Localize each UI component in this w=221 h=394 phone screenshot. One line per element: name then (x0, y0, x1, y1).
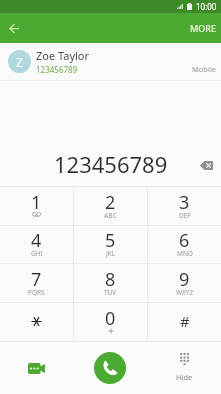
staticText: 10:00 (196, 1, 217, 12)
staticText: 4 (31, 228, 42, 253)
staticText: Hide (176, 372, 193, 382)
button[interactable]: Hide (147, 342, 221, 394)
staticText: PQRS (28, 288, 45, 297)
staticText: 123456789 (54, 149, 168, 179)
staticText: MNO (177, 249, 193, 258)
button[interactable]: Backspace (194, 153, 218, 177)
staticText: # (180, 311, 190, 331)
button[interactable]: Z (0, 43, 221, 80)
staticText: 8 (105, 267, 116, 292)
button[interactable]: 8 (74, 264, 147, 302)
button[interactable]: 5 (74, 226, 147, 263)
button[interactable]: 2 (74, 187, 147, 225)
staticText: 123456789 (36, 64, 78, 75)
staticText: Mobile (192, 64, 217, 74)
staticText: Z (16, 54, 23, 70)
button[interactable]: 1 (0, 187, 73, 225)
staticText: WXYZ (176, 288, 194, 297)
staticText: 2 (105, 190, 116, 215)
staticText: 9 (179, 267, 190, 292)
button[interactable]: Back (0, 14, 28, 42)
staticText: 6 (179, 228, 190, 253)
button[interactable]: 0 (74, 303, 147, 341)
button[interactable] (0, 303, 73, 341)
staticText: Zoe Taylor (36, 48, 90, 63)
button[interactable]: 6 (148, 226, 221, 263)
button[interactable]: 7 (0, 264, 73, 302)
staticText: JKL (106, 249, 116, 258)
staticText: 3 (179, 190, 190, 215)
button[interactable]: 3 (148, 187, 221, 225)
staticText: 0 (105, 306, 116, 331)
staticText: 5 (105, 228, 116, 253)
staticText: TUV (104, 288, 117, 297)
staticText: MORE (190, 22, 217, 34)
staticText: GHI (31, 249, 43, 258)
button[interactable]: 4 (0, 226, 73, 263)
button[interactable]: # (148, 303, 221, 341)
button[interactable]: Call (73, 342, 147, 394)
button[interactable]: MORE (183, 13, 221, 43)
button[interactable]: Video call (0, 342, 73, 394)
button[interactable]: 9 (148, 264, 221, 302)
staticText: ABC (104, 211, 117, 220)
staticText: DEF (179, 211, 191, 220)
staticText: 7 (31, 267, 42, 292)
staticText: 1 (31, 190, 42, 215)
